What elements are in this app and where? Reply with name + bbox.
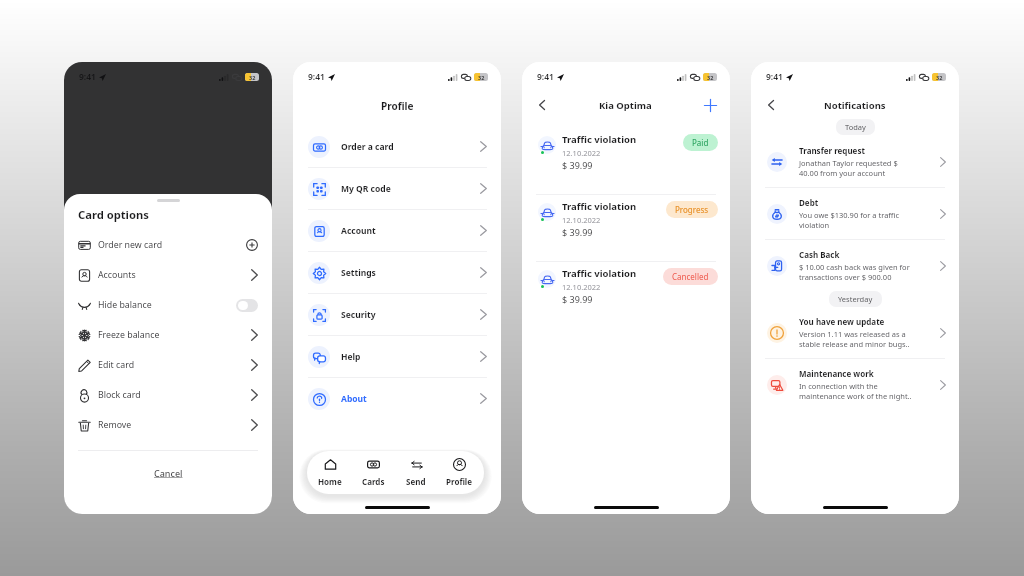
staticText: Account — [341, 225, 376, 237]
staticText: Cash Back — [799, 249, 840, 260]
button[interactable]: Order a card — [293, 126, 501, 167]
staticText: Maintenance work — [799, 368, 874, 379]
staticText: Edit card — [98, 359, 135, 371]
staticText: You have new update — [799, 316, 885, 327]
staticText: $ 39.99 — [562, 159, 593, 171]
button[interactable]: My QR code — [293, 168, 501, 209]
staticText: 32 — [936, 74, 943, 81]
staticText: $ 39.99 — [562, 226, 593, 238]
button[interactable]: You have new update — [751, 307, 959, 358]
staticText: Kia Optima — [599, 99, 652, 112]
staticText: Home — [318, 476, 342, 487]
button[interactable]: Order new card — [64, 230, 272, 260]
staticText: Order new card — [98, 239, 163, 251]
staticText: Order a card — [341, 141, 394, 153]
staticText: 9:41 — [766, 71, 783, 83]
staticText: Block card — [98, 389, 141, 401]
staticText: Hide balance — [98, 299, 152, 311]
staticText: Cards — [362, 476, 385, 487]
staticText: Help — [341, 351, 361, 363]
button[interactable]: Traffic violation — [522, 262, 730, 328]
staticText: Remove — [98, 419, 132, 431]
button[interactable]: Back — [535, 98, 549, 112]
staticText: In connection with the maintenance work … — [799, 381, 912, 401]
button[interactable]: Account — [293, 210, 501, 251]
staticText: Send — [406, 476, 426, 487]
staticText: 32 — [478, 74, 485, 81]
button[interactable]: Home — [309, 455, 351, 490]
staticText: Notifications — [824, 99, 886, 112]
staticText: Settings — [341, 267, 376, 279]
staticText: 32 — [249, 74, 256, 81]
staticText: Jonathan Taylor requested $ 40.00 from y… — [799, 158, 898, 178]
staticText: Cancel — [154, 467, 183, 479]
staticText: $ 10.00 cash back was given for transact… — [799, 262, 910, 282]
staticText: Debt — [799, 197, 819, 208]
staticText: 12.10.2022 — [562, 215, 601, 225]
button[interactable]: Settings — [293, 252, 501, 293]
staticText: Today — [845, 122, 866, 132]
button[interactable]: Transfer request — [751, 136, 959, 187]
button[interactable]: Hide balance — [64, 290, 272, 320]
button[interactable]: Freeze balance — [64, 320, 272, 350]
staticText: You owe $130.90 for a traffic violation — [799, 210, 900, 230]
button[interactable]: Back — [764, 98, 778, 112]
staticText: $ 39.99 — [562, 293, 593, 305]
button[interactable]: Help — [293, 336, 501, 377]
staticText: Progress — [675, 204, 709, 215]
button[interactable]: Debt — [751, 188, 959, 239]
button[interactable]: Maintenance work — [751, 359, 959, 410]
staticText: Profile — [381, 99, 414, 113]
staticText: Cancelled — [672, 271, 709, 282]
staticText: Accounts — [98, 269, 136, 281]
button[interactable]: Add — [703, 98, 717, 112]
staticText: Version 1.11 was released as a stable re… — [799, 329, 910, 349]
staticText: 9:41 — [308, 71, 325, 83]
staticText: Freeze balance — [98, 329, 160, 341]
button[interactable]: Send — [397, 455, 435, 490]
button[interactable]: Hide balance toggle — [236, 299, 258, 312]
button[interactable]: Cards — [353, 455, 394, 490]
staticText: My QR code — [341, 183, 391, 195]
staticText: Traffic violation — [562, 267, 637, 280]
staticText: Traffic violation — [562, 133, 637, 146]
button[interactable]: Cancel — [132, 460, 205, 486]
staticText: 9:41 — [537, 71, 554, 83]
staticText: 12.10.2022 — [562, 282, 601, 292]
button[interactable]: Security — [293, 294, 501, 335]
staticText: Yesterday — [838, 294, 873, 304]
staticText: 9:41 — [79, 71, 96, 83]
staticText: Traffic violation — [562, 200, 637, 213]
button[interactable]: About — [293, 378, 501, 419]
staticText: Transfer request — [799, 145, 865, 156]
button[interactable]: Block card — [64, 380, 272, 410]
button[interactable]: Edit card — [64, 350, 272, 380]
button[interactable]: Accounts — [64, 260, 272, 290]
staticText: 32 — [707, 74, 714, 81]
staticText: About — [341, 393, 367, 405]
staticText: Profile — [446, 476, 473, 487]
staticText: Card options — [78, 207, 149, 222]
staticText: 12.10.2022 — [562, 148, 601, 158]
button[interactable]: Order new card — [246, 239, 258, 251]
button[interactable]: Traffic violation — [522, 195, 730, 261]
staticText: Security — [341, 309, 376, 321]
staticText: Paid — [692, 137, 709, 148]
button[interactable]: Traffic violation — [522, 128, 730, 194]
button[interactable]: Remove — [64, 410, 272, 440]
button[interactable]: Cash Back — [751, 240, 959, 291]
button[interactable]: Profile — [437, 455, 482, 490]
